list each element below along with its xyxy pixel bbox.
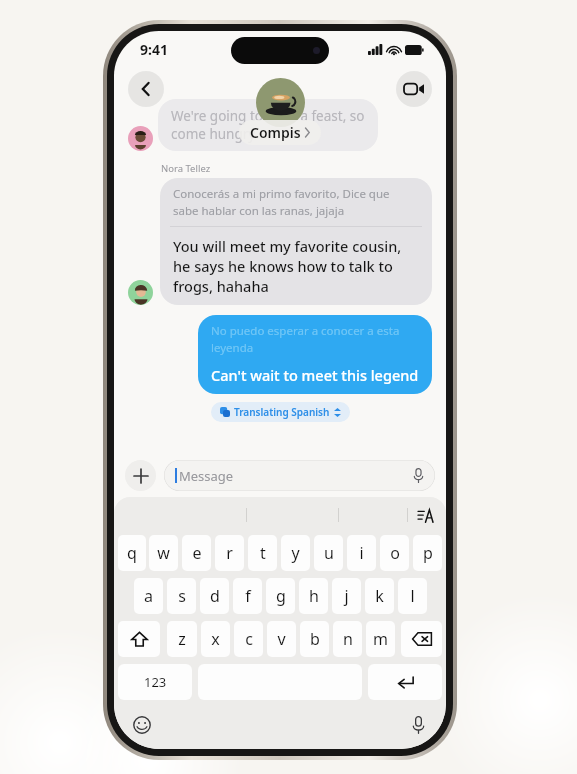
staticText: e [192,542,202,564]
button[interactable]: e [182,535,211,571]
button[interactable]: Shift [118,621,160,657]
staticText: c [245,628,253,650]
staticText: r [226,542,233,564]
button[interactable]: u [314,535,343,571]
staticText: Nora Tellez [161,162,211,175]
staticText: p [423,542,433,564]
staticText: Message [179,467,413,485]
button[interactable]: n [333,621,362,657]
staticText: Compis [250,123,301,142]
button[interactable]: Compis [239,120,321,145]
button[interactable]: c [234,621,263,657]
button[interactable]: Formatting [414,504,436,526]
button[interactable]: b [300,621,329,657]
other: Backspace [412,632,432,646]
other: Shift [131,631,148,648]
button[interactable]: Translating Spanish [211,402,350,422]
staticText: f [245,585,251,607]
button[interactable]: Backspace [401,621,442,657]
button[interactable]: No puedo esperar a conocer a esta leyend… [198,315,432,394]
staticText: m [373,628,388,650]
button[interactable]: FaceTime video call [396,71,432,107]
button[interactable]: Dictation [406,713,430,737]
button[interactable]: We're going to have a feast, so come hun… [158,99,378,151]
button[interactable]: r [215,535,244,571]
button[interactable]: w [149,535,178,571]
button[interactable]: Message [164,460,435,491]
staticText: i [359,542,364,564]
staticText: q [127,542,137,564]
staticText: t [260,542,266,564]
button[interactable]: v [267,621,296,657]
staticText: Can't wait to meet this legend [211,365,419,385]
staticText: w [157,542,170,564]
staticText: x [211,628,220,650]
staticText: 123 [144,673,167,691]
button[interactable]: s [167,578,196,614]
staticText: u [324,542,334,564]
staticText: j [344,585,349,607]
staticText: Conocerás a mi primo favorito, Dice que … [173,186,390,218]
staticText: k [375,585,384,607]
button[interactable]: z [167,621,197,657]
staticText: Translating Spanish [234,405,330,419]
staticText: You will meet my favorite cousin, he say… [173,236,402,296]
staticText: d [210,585,220,607]
staticText: l [410,585,415,607]
staticText: s [178,585,186,607]
staticText: o [390,542,400,564]
button[interactable]: Return [368,664,442,700]
button[interactable]: p [413,535,442,571]
button[interactable]: Add attachment [125,460,156,491]
button[interactable]: i [347,535,376,571]
staticText: We're going to have a feast, so come hun… [171,107,365,143]
button[interactable]: Back [128,71,164,107]
button[interactable]: j [332,578,361,614]
button[interactable]: m [366,621,395,657]
button[interactable]: Emoji [130,713,154,737]
staticText: g [276,585,286,607]
button[interactable]: y [281,535,310,571]
button[interactable]: a [134,578,163,614]
button[interactable]: h [299,578,328,614]
staticText: v [277,628,286,650]
staticText: h [309,585,319,607]
button[interactable]: l [398,578,427,614]
staticText: n [343,628,353,650]
staticText: No puedo esperar a conocer a esta leyend… [211,323,400,355]
button[interactable]: t [248,535,277,571]
staticText: z [178,628,186,650]
button[interactable]: Conocerás a mi primo favorito, Dice que … [160,178,432,305]
button[interactable]: d [200,578,229,614]
button[interactable]: q [118,535,146,571]
button[interactable]: o [380,535,409,571]
other: Dictate message [413,468,424,483]
staticText: 9:41 [140,40,168,59]
staticText: b [310,628,320,650]
button[interactable]: 123 [118,664,192,700]
button[interactable]: f [233,578,262,614]
staticText: y [291,542,300,564]
button[interactable]: x [201,621,230,657]
button[interactable]: k [365,578,394,614]
button[interactable]: g [266,578,295,614]
staticText: a [144,585,153,607]
